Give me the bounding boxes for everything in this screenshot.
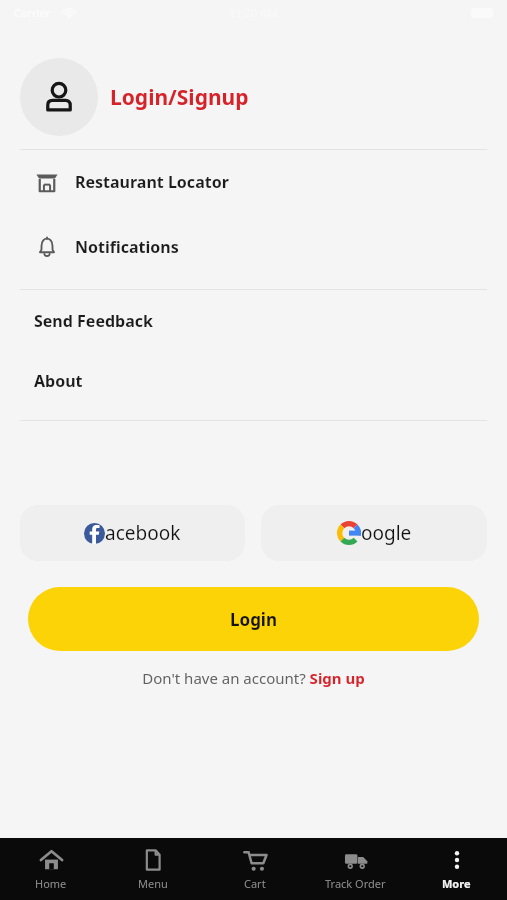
staticText: Login — [230, 608, 278, 631]
button[interactable]: Don't have an account? Sign up — [142, 668, 365, 688]
staticText: About — [34, 370, 83, 392]
button[interactable]: Notifications — [0, 230, 507, 264]
staticText: Track Order — [325, 876, 386, 891]
staticText: Home — [35, 876, 67, 891]
button[interactable]: Cart — [204, 838, 305, 900]
button[interactable]: Login/Signup — [0, 58, 507, 136]
staticText: oogle — [361, 520, 412, 546]
button[interactable]: Menu — [102, 838, 204, 900]
button[interactable]: Home — [0, 838, 102, 900]
button[interactable]: More — [406, 838, 507, 900]
staticText: Send Feedback — [34, 310, 153, 332]
button[interactable]: Login — [28, 587, 479, 651]
button[interactable]: acebook — [20, 505, 245, 561]
button[interactable]: About — [0, 366, 507, 396]
button[interactable]: oogle — [261, 505, 487, 561]
staticText: acebook — [105, 520, 181, 546]
staticText: Cart — [244, 876, 266, 891]
staticText: Login/Signup — [110, 83, 249, 112]
staticText: Notifications — [75, 236, 179, 258]
staticText: Restaurant Locator — [75, 171, 229, 193]
button[interactable]: Send Feedback — [0, 306, 507, 336]
button[interactable]: Track Order — [305, 838, 406, 900]
staticText: Menu — [138, 876, 168, 891]
button[interactable]: Restaurant Locator — [0, 165, 507, 199]
staticText: More — [442, 876, 471, 891]
staticText: Don't have an account? Sign up — [142, 668, 365, 688]
